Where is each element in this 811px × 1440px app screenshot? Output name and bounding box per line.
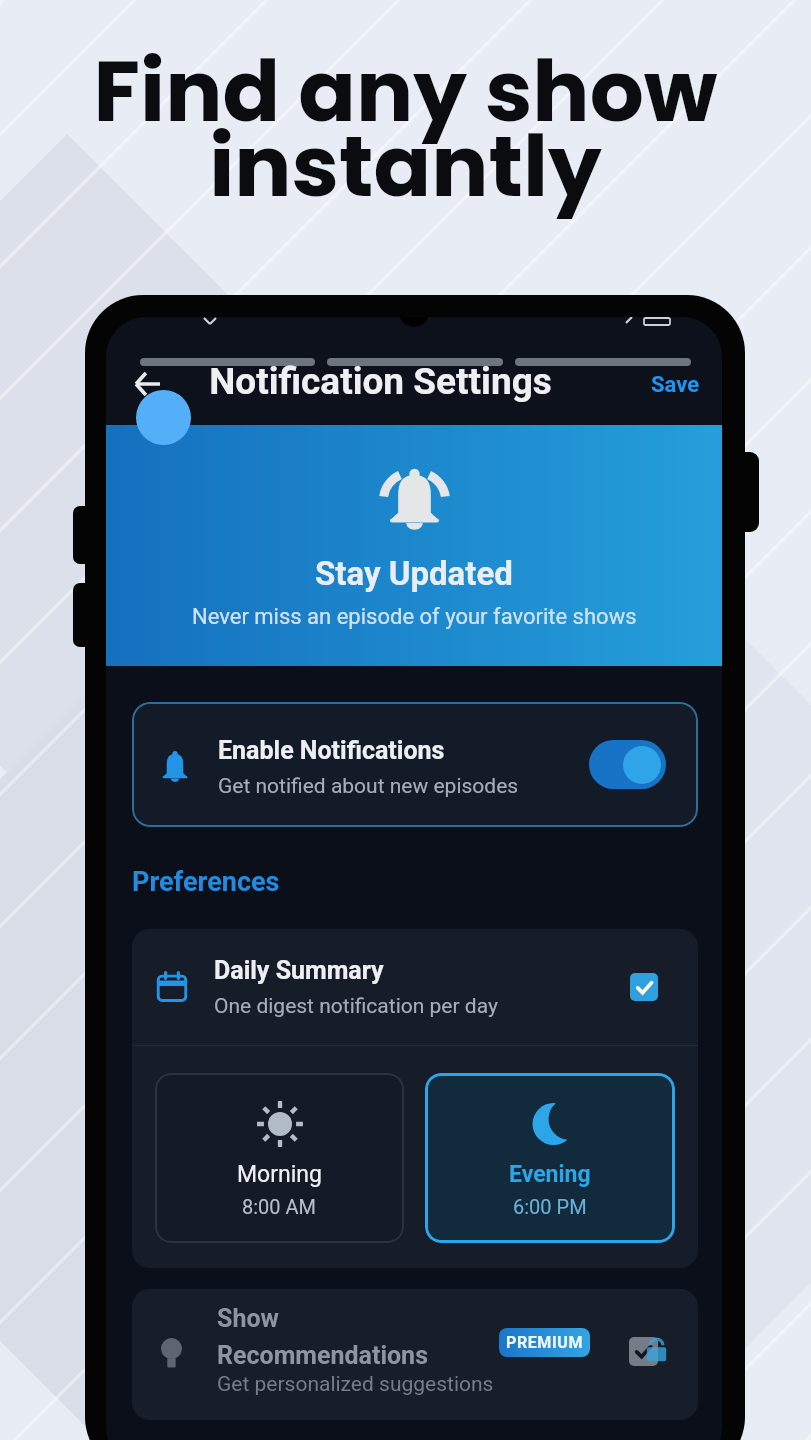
staticText: 6:00 PM (513, 1195, 587, 1218)
staticText: Find any show instantly (0, 32, 811, 225)
staticText: Get personalized suggestions (217, 1372, 494, 1397)
button[interactable]: Daily summary enabled (630, 973, 658, 1001)
staticText: Preferences (132, 866, 280, 898)
button[interactable]: PREMIUM (499, 1328, 590, 1357)
button[interactable]: Toggle notifications (589, 740, 666, 789)
staticText: Daily Summary (214, 956, 384, 985)
button[interactable]: Enable Notifications (132, 702, 698, 827)
staticText: Show Recommendations (217, 1304, 428, 1370)
button[interactable]: Save (640, 364, 710, 406)
staticText: Save (651, 372, 700, 398)
staticText: Stay Updated (315, 554, 513, 593)
button[interactable]: Morning (155, 1073, 404, 1243)
staticText: 8:00 AM (242, 1195, 317, 1218)
staticText: Never miss an episode of your favorite s… (192, 604, 637, 630)
button[interactable]: Evening (425, 1073, 675, 1243)
staticText: Morning (237, 1161, 322, 1188)
staticText: Enable Notifications (218, 736, 445, 765)
button[interactable]: Show Recommendations (132, 1289, 698, 1420)
button[interactable]: Back (124, 364, 172, 404)
button[interactable]: Daily Summary (132, 929, 698, 1045)
staticText: Notification Settings (209, 360, 552, 402)
staticText: Evening (509, 1161, 591, 1188)
staticText: Get notified about new episodes (218, 774, 519, 799)
staticText: One digest notification per day (214, 994, 498, 1019)
staticText: PREMIUM (506, 1333, 584, 1352)
